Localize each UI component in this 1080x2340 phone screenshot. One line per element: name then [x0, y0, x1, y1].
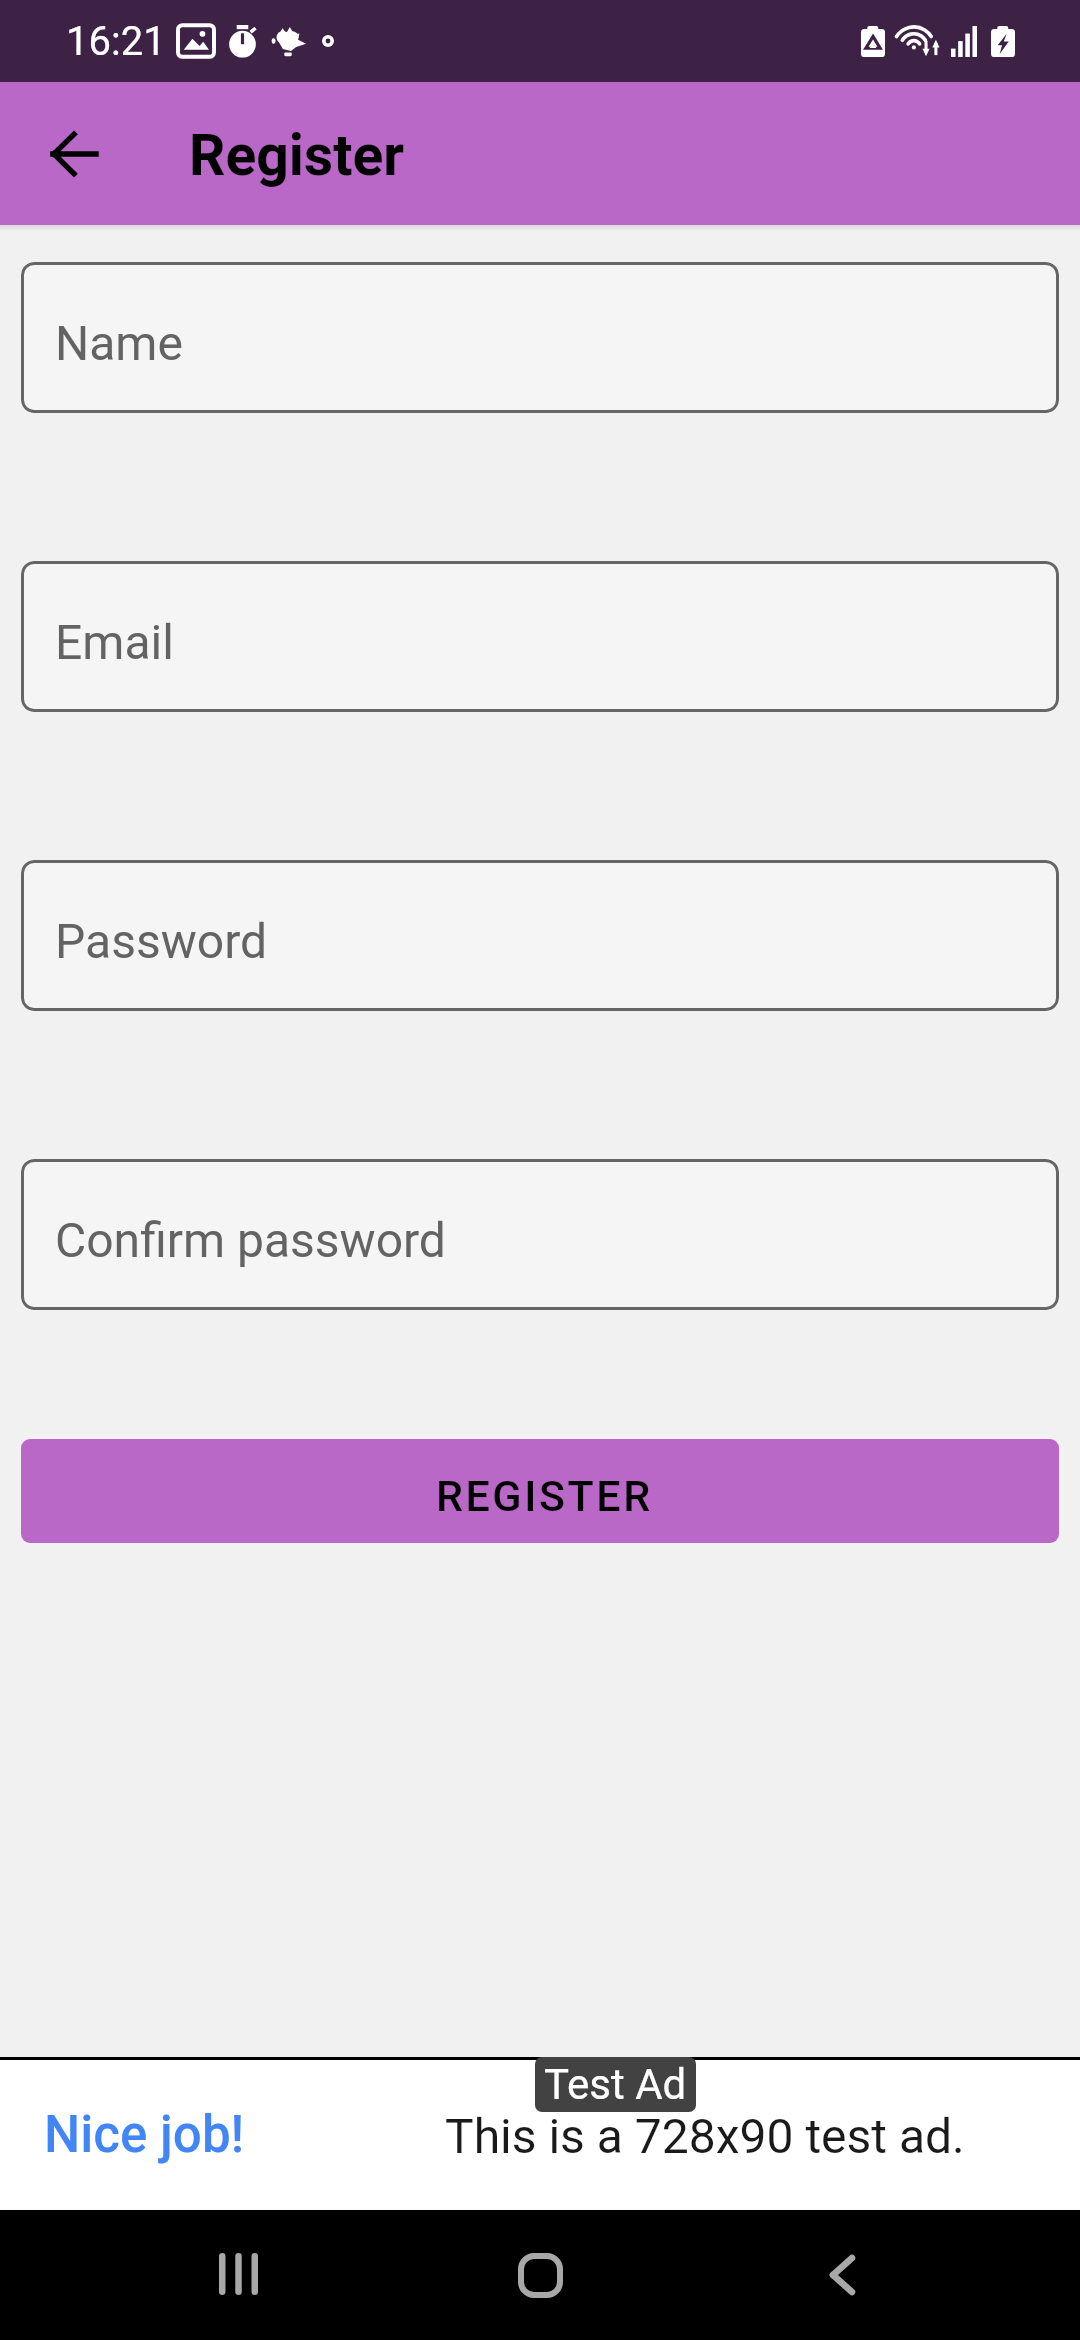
staticText: Name	[55, 315, 183, 371]
button[interactable]: Confirm password	[21, 1159, 1059, 1310]
staticText: Test Ad	[544, 2060, 687, 2109]
staticText: Confirm password	[55, 1212, 446, 1268]
button[interactable]: Back	[743, 2210, 943, 2340]
button[interactable]: Email	[21, 561, 1059, 712]
button[interactable]: Name	[21, 262, 1059, 413]
button[interactable]: REGISTER	[21, 1439, 1059, 1543]
button[interactable]: Password	[21, 860, 1059, 1011]
staticText: Email	[55, 614, 174, 670]
staticText: Nice job!	[44, 2105, 245, 2165]
button[interactable]: Recent apps	[138, 2210, 338, 2340]
staticText: This is a 728x90 test ad.	[445, 2108, 965, 2164]
button[interactable]: Back	[26, 106, 122, 202]
button[interactable]: Nice job!	[0, 2057, 1080, 2210]
staticText: Password	[55, 913, 268, 969]
staticText: Register	[189, 122, 405, 189]
button[interactable]: Home	[338, 2210, 743, 2340]
staticText: REGISTER	[436, 1471, 653, 1521]
staticText: 16:21	[66, 18, 166, 65]
